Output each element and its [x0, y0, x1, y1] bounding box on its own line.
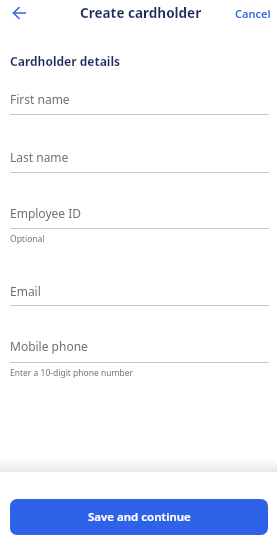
staticText: Create cardholder	[80, 4, 202, 22]
staticText: Mobile phone	[10, 338, 88, 354]
staticText: First name	[10, 91, 70, 107]
staticText: Optional	[10, 233, 45, 245]
button[interactable]	[6, 2, 32, 24]
staticText: Last name	[10, 149, 69, 165]
button[interactable]: Cancel	[235, 6, 271, 21]
staticText: Cardholder details	[10, 53, 121, 69]
button[interactable]: First name	[0, 91, 277, 115]
button[interactable]: Last name	[0, 149, 277, 173]
button[interactable]: Employee ID	[0, 205, 277, 229]
staticText: Enter a 10-digit phone number	[10, 367, 133, 379]
staticText: Employee ID	[10, 205, 81, 221]
button[interactable]: Save and continue	[10, 499, 268, 535]
button[interactable]: Email	[0, 283, 277, 306]
staticText: Save and continue	[88, 509, 191, 525]
staticText: Email	[10, 283, 41, 299]
button[interactable]: Mobile phone	[0, 338, 277, 363]
staticText: Cancel	[235, 6, 271, 21]
